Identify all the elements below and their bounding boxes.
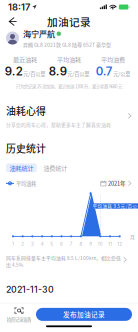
staticText: 元/公里 — [113, 70, 130, 77]
staticText: 油费统计 — [43, 163, 67, 172]
staticText: 3 — [31, 241, 34, 247]
button[interactable]: 2021年 — [100, 179, 132, 187]
staticText: 已为您记录 25 次加油，累计加油 1208 升，累计花费 9680 元 — [16, 83, 122, 90]
button[interactable]: 油费统计 — [40, 163, 71, 172]
staticText: 10 — [98, 241, 103, 247]
staticText: 平均油耗 9.5元/百公里 — [92, 203, 138, 209]
button[interactable]: 油耗心得 — [0, 90, 138, 128]
staticText: 油耗统计 — [9, 163, 33, 172]
staticText: 11 — [108, 241, 112, 247]
button[interactable]: 海宁严航 — [0, 29, 138, 47]
button[interactable]: 返回 — [5, 14, 21, 28]
staticText: 7 — [70, 241, 73, 247]
staticText: 4 — [41, 241, 44, 247]
staticText: 2 — [21, 241, 24, 247]
button[interactable]: 同车系同排量车主平均油耗 8.5 L/100km，相比您低出 4.5% — [0, 247, 133, 268]
staticText: 1 — [12, 241, 14, 247]
staticText: 18:17 — [8, 1, 30, 13]
staticText: 分享您的用车心得，帮助更多车主了解真实油耗 — [6, 121, 111, 128]
staticText: 最近油耗 — [13, 55, 37, 64]
button[interactable]: 拍照记录油费 — [6, 305, 32, 323]
staticText: 奔腾 GL8 2021款 GL8 陆尊 652T 豪华型 — [23, 41, 111, 48]
button[interactable]: 发布加油记录 — [36, 308, 132, 321]
staticText: 0.7 — [96, 64, 113, 78]
staticText: 月 — [130, 233, 135, 240]
staticText: 12 — [117, 241, 122, 247]
staticText: 8.9 — [49, 64, 67, 78]
staticText: 9.2 — [5, 64, 23, 78]
staticText: 发布加油记录 — [63, 310, 105, 319]
staticText: 历史统计 — [6, 141, 46, 155]
staticText: 2021年 — [108, 179, 126, 187]
staticText: 海宁严航 — [23, 28, 55, 40]
staticText: 2021-11-30 — [6, 284, 54, 295]
staticText: 平均油耗 — [57, 55, 81, 64]
staticText: 8 — [79, 241, 82, 247]
staticText: 平均油耗 — [16, 179, 36, 187]
staticText: 5 — [50, 241, 53, 247]
staticText: 元/百公里 — [23, 70, 45, 77]
button[interactable]: 油耗统计 — [6, 163, 37, 172]
staticText: 油耗心得 — [6, 104, 46, 118]
staticText: 加油记录 — [47, 14, 91, 29]
staticText: 6 — [60, 241, 63, 247]
staticText: 拍照记录油费 — [7, 316, 31, 322]
staticText: 元/百公里 — [67, 70, 89, 77]
staticText: 9 — [89, 241, 92, 247]
staticText: 平均油费 — [101, 55, 125, 64]
staticText: 同车系同排量车主平均油耗 8.5 L/100km，相比您低出 4.5% — [6, 254, 121, 268]
